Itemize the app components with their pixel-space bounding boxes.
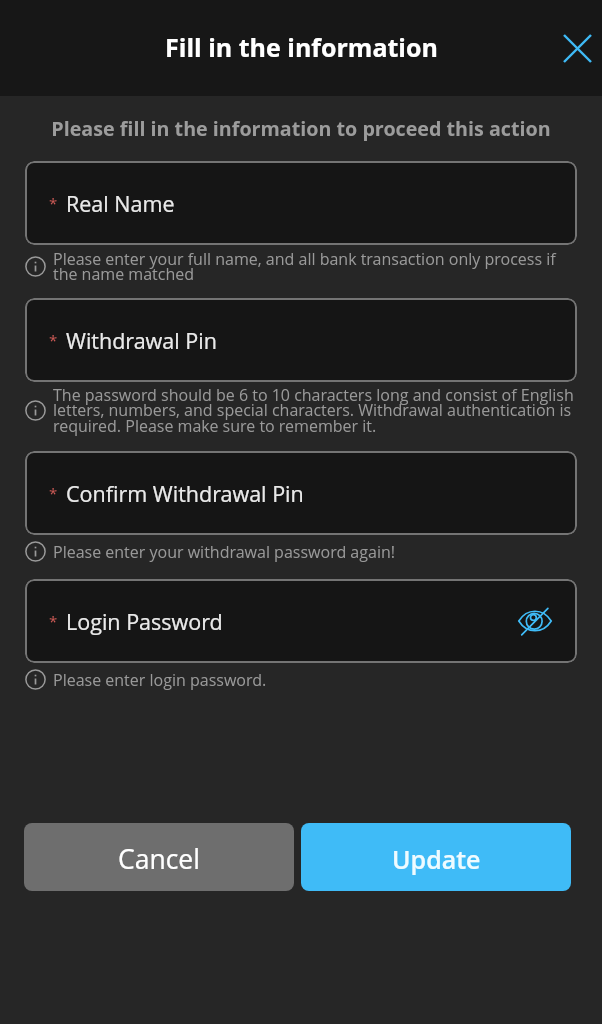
staticText: Please fill in the information to procee… [0,115,602,142]
staticText: The password should be 6 to 10 character… [53,384,577,436]
staticText: Fill in the information [165,30,438,64]
button[interactable]: * [25,579,577,663]
staticText: Please enter your withdrawal password ag… [53,541,396,562]
button[interactable]: * [25,298,577,382]
button[interactable]: * [25,451,577,535]
staticText: Withdrawal Pin [66,326,217,355]
staticText: Cancel [118,841,200,877]
staticText: Confirm Withdrawal Pin [66,479,304,508]
staticText: Please enter your full name, and all ban… [53,248,577,285]
staticText: Update [392,842,481,876]
staticText: * [49,483,58,503]
button[interactable]: * [25,161,577,245]
button[interactable]: Show password [512,598,558,644]
button[interactable]: Update [301,823,571,891]
staticText: * [49,330,58,350]
staticText: Please enter login password. [53,669,267,690]
button[interactable]: Close [553,24,601,72]
button[interactable]: Cancel [24,823,294,891]
staticText: * [49,611,58,631]
staticText: * [49,193,58,213]
staticText: Real Name [66,189,175,218]
staticText: Login Password [66,607,223,636]
